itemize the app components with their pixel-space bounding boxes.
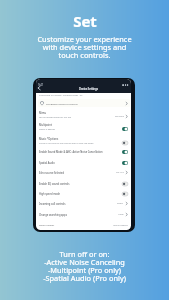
staticText: Pause or lift controls the controls way …	[39, 142, 94, 145]
staticText: Turn off or on: -Active Noise Canceling …	[43, 249, 126, 284]
button[interactable]: Incoming call controls	[39, 199, 128, 208]
staticText: Select	[117, 202, 124, 205]
button[interactable]: Multipoint	[39, 122, 128, 131]
staticText: Set	[73, 11, 97, 31]
button[interactable]: Menu	[39, 110, 128, 119]
button[interactable]	[122, 127, 128, 131]
staticText: Echo source Selected	[39, 171, 65, 174]
button[interactable]: Change searching apps	[39, 210, 128, 219]
staticText: ● ▮ ▮	[122, 83, 129, 86]
staticText: Configure account controls	[46, 102, 78, 105]
staticText: Incoming call controls	[39, 202, 66, 205]
button[interactable]: Spatial Audio	[39, 158, 128, 167]
button[interactable]	[122, 141, 128, 145]
button[interactable]: Enable Sound Mode & ANC: Active Noise Ca…	[39, 147, 128, 156]
staticText: AB0123456789	[113, 224, 128, 227]
button[interactable]: High speed mode	[39, 189, 128, 198]
staticText: Change searching apps	[39, 213, 67, 216]
staticText: Device Settings	[79, 87, 98, 91]
staticText: On: n/a	[116, 171, 124, 174]
staticText: Connected to a device · Earbuds ready · …	[39, 94, 83, 97]
staticText: Multipoint	[39, 123, 52, 127]
button[interactable]	[122, 161, 128, 165]
staticText: Customize your experience with device se…	[37, 34, 132, 61]
staticText: None	[118, 213, 124, 216]
button[interactable]: Back	[36, 85, 42, 91]
staticText: Enable EQ sound controls	[39, 182, 70, 185]
button[interactable]: Echo source Selected	[39, 168, 128, 177]
button[interactable]	[122, 150, 128, 154]
button[interactable]: Enable EQ sound controls	[39, 179, 128, 188]
button[interactable]: Configure account controls	[38, 99, 130, 107]
button[interactable]	[122, 192, 128, 196]
staticText: Switch 2 devices	[39, 128, 55, 131]
staticText: Personal	[115, 115, 124, 118]
staticText: High speed mode	[39, 192, 61, 195]
staticText: Spatial Audio	[39, 161, 55, 164]
button[interactable]	[122, 182, 128, 186]
button[interactable]: Music *Options	[39, 136, 128, 145]
staticText: Music *Options	[39, 137, 59, 141]
staticText: 9:41	[38, 83, 44, 86]
staticText: Enable Sound Mode & ANC: Active Noise Ca…	[39, 150, 103, 153]
staticText: set the desired mode for this file	[39, 116, 71, 119]
staticText: Serial number	[39, 224, 55, 227]
staticText: Menu	[39, 111, 47, 115]
